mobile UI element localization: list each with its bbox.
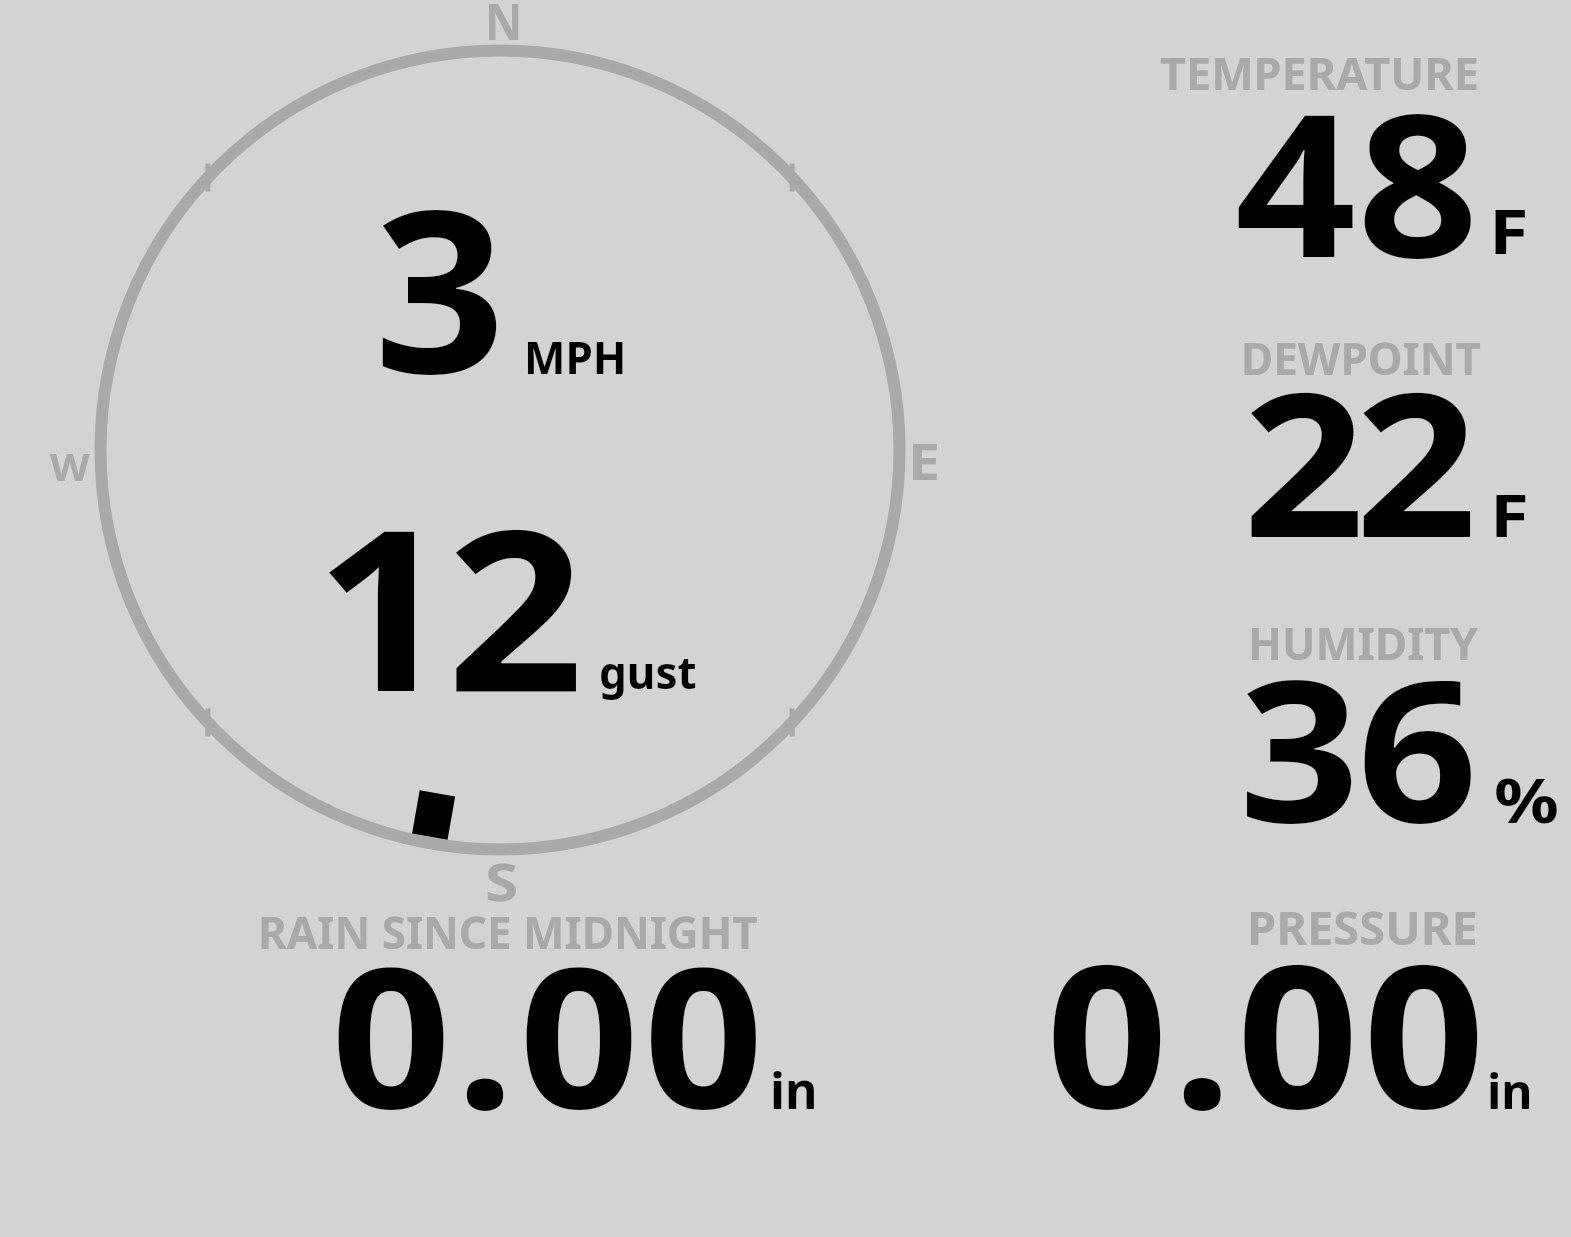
staticText: S (485, 845, 519, 916)
staticText: 12 (315, 453, 579, 757)
staticText: E (908, 427, 940, 495)
staticText: MPH (524, 327, 627, 387)
staticText: 48 (1235, 46, 1480, 314)
staticText: DEWPOINT (1241, 328, 1481, 388)
staticText: RAIN SINCE MIDNIGHT (258, 902, 758, 962)
staticText: 36 (1239, 612, 1477, 879)
button[interactable]: Rain since midnight, 0.00 inches (230, 895, 850, 1130)
staticText: W (50, 440, 90, 492)
staticText: in (770, 1056, 818, 1124)
button[interactable]: Humidity, 36 percent (1000, 595, 1560, 850)
staticText: PRESSURE (1247, 895, 1478, 959)
staticText: N (485, 0, 523, 55)
staticText: 0.00 (331, 901, 768, 1165)
button[interactable]: Dew point, 22 degrees Fahrenheit (1000, 310, 1560, 570)
staticText: 0.00 (1046, 897, 1490, 1165)
staticText: 3 (374, 134, 506, 439)
button[interactable]: Temperature, 48 degrees Fahrenheit (1000, 30, 1560, 300)
staticText: 22 (1243, 324, 1468, 595)
staticText: HUMIDITY (1248, 613, 1478, 673)
staticText: gust (599, 642, 697, 702)
button[interactable]: Wind direction compass, 3 miles per hour (92, 42, 908, 858)
button[interactable]: Pressure, 0.00 inches (1000, 895, 1560, 1130)
staticText: in (1487, 1058, 1533, 1123)
staticText: F (1489, 189, 1529, 272)
staticText: TEMPERATURE (1160, 42, 1479, 103)
staticText: % (1494, 758, 1560, 841)
staticText: F (1490, 473, 1529, 555)
